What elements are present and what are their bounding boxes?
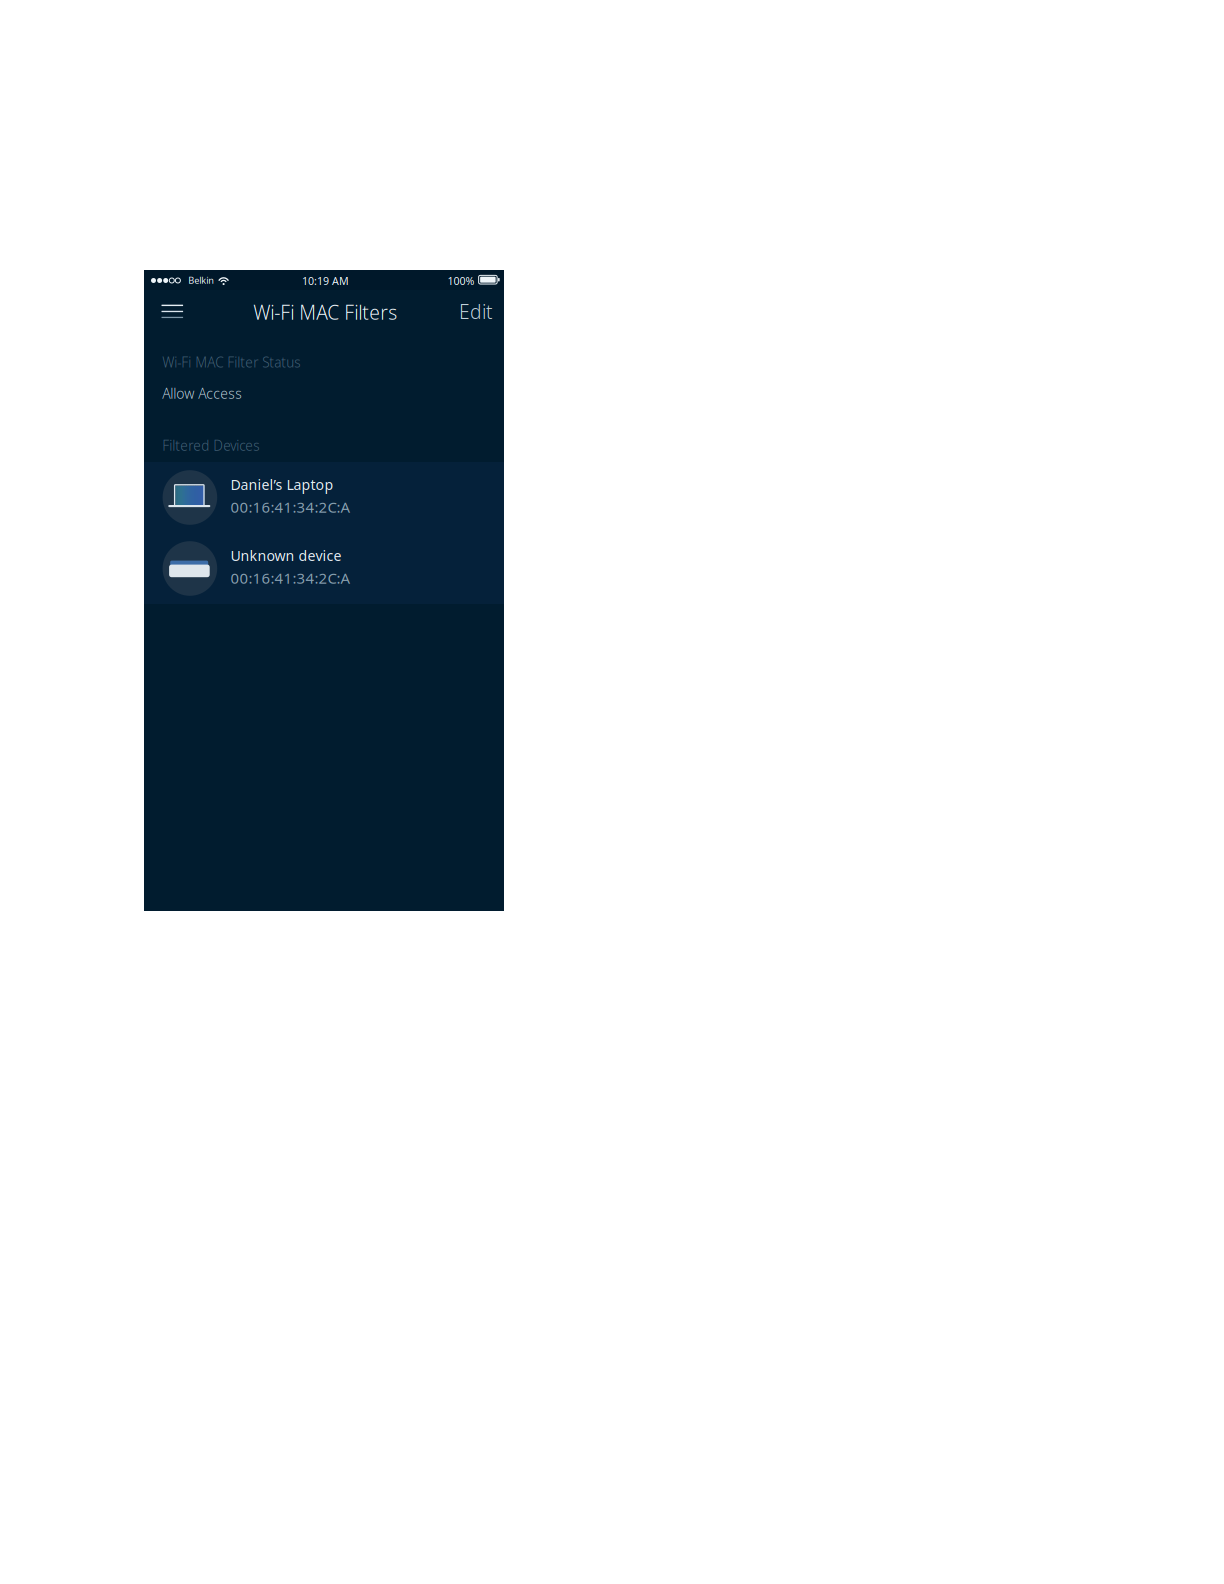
staticText: Belkin: [188, 274, 214, 286]
staticText: 00:16:41:34:2C:A: [230, 497, 350, 517]
staticText: 10:19 AM: [302, 273, 349, 288]
staticText: Edit: [459, 298, 493, 325]
staticText: Filtered Devices: [162, 436, 259, 455]
button[interactable]: Edit: [435, 289, 493, 333]
staticText: Daniel’s Laptop: [230, 475, 333, 494]
staticText: 00:16:41:34:2C:A: [230, 568, 350, 588]
staticText: Wi-Fi MAC Filter Status: [162, 353, 300, 371]
button[interactable]: Unknown device: [144, 533, 504, 604]
button[interactable]: Menu: [150, 290, 194, 334]
staticText: Unknown device: [230, 546, 341, 565]
staticText: Wi-Fi MAC Filters: [253, 299, 397, 325]
staticText: 100%: [448, 273, 475, 288]
button[interactable]: Daniel’s Laptop: [144, 462, 504, 533]
staticText: Allow Access: [162, 384, 242, 403]
